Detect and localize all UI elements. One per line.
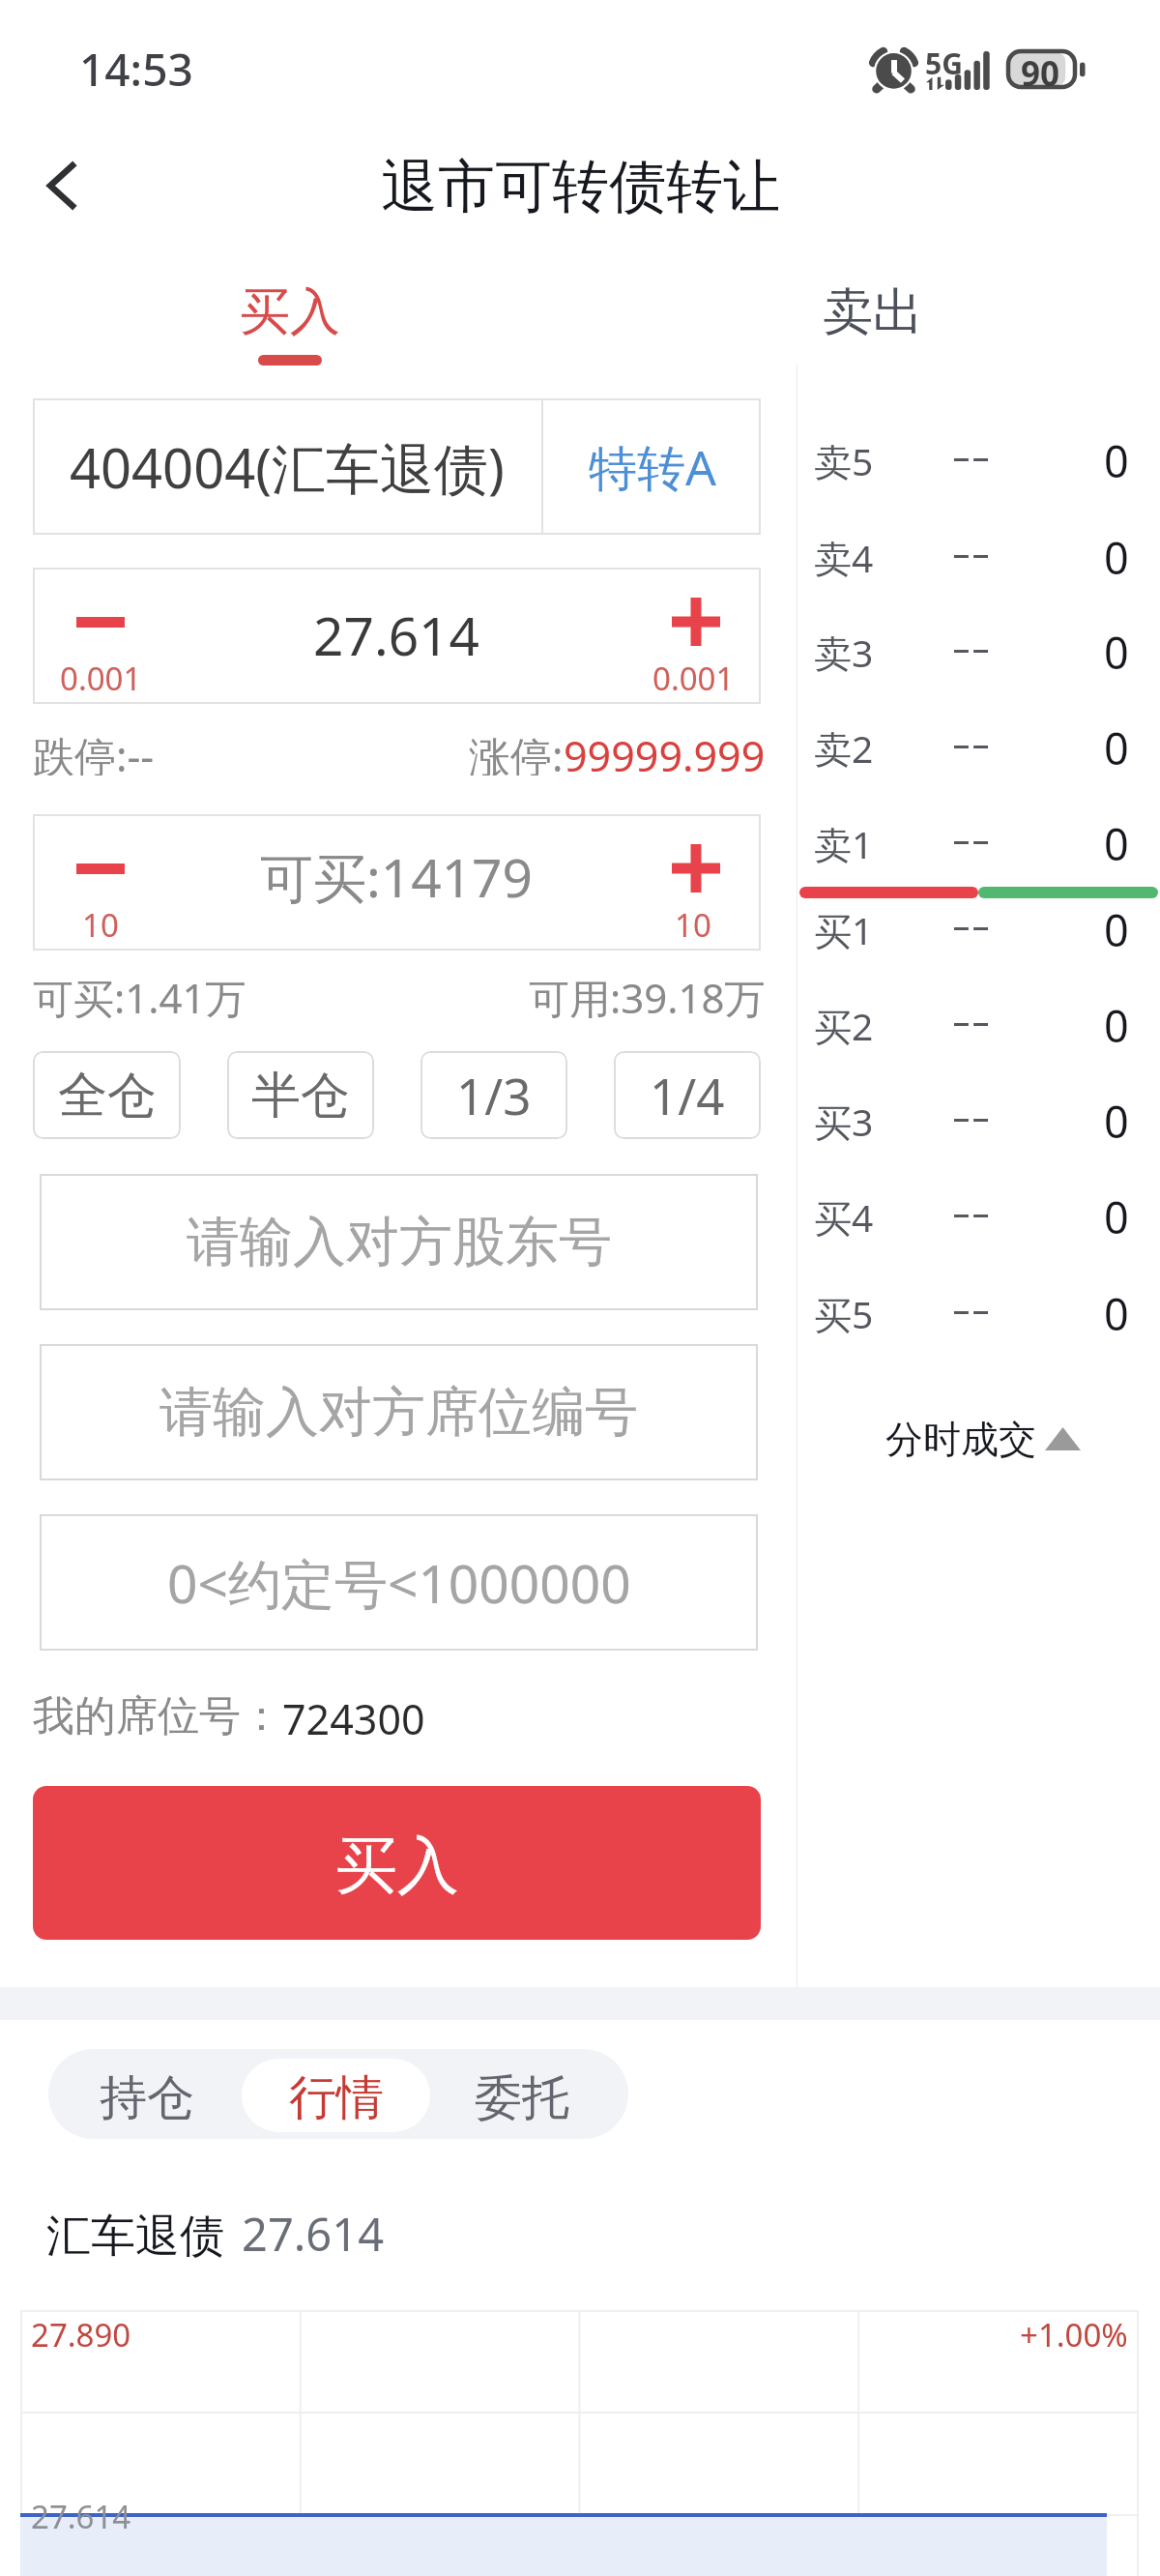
button[interactable]: 买4	[797, 1169, 1160, 1264]
staticText: 行情	[289, 2068, 384, 2128]
staticText: 10	[82, 903, 119, 947]
button[interactable]: 持仓	[52, 2049, 242, 2139]
staticText: 404004(汇车退债)	[70, 430, 505, 504]
staticText: 14:53	[79, 39, 193, 100]
staticText: 0<约定号<1000000	[167, 1546, 631, 1619]
staticText: 0	[1104, 900, 1129, 959]
staticText: 退市可转债转让	[381, 151, 780, 222]
staticText: 27.614	[242, 2203, 385, 2265]
staticText: 可用:39.18万	[529, 970, 766, 1018]
button[interactable]: 买3	[797, 1073, 1160, 1168]
staticText: 买1	[814, 904, 874, 955]
button[interactable]: 买5	[797, 1266, 1160, 1361]
button[interactable]: 1/3	[420, 1051, 567, 1139]
staticText: 卖3	[814, 627, 874, 678]
staticText: 0.001	[652, 657, 735, 700]
staticText: 我的席位号：	[33, 1690, 282, 1742]
staticText: 可买:14179	[260, 840, 534, 913]
button[interactable]: Increase	[625, 814, 761, 951]
button[interactable]: 行情	[242, 2059, 430, 2132]
staticText: 1/4	[650, 1062, 725, 1128]
staticText: 27.890	[31, 2313, 131, 2356]
staticText: 0	[1104, 814, 1129, 873]
button[interactable]: 全仓	[33, 1051, 181, 1139]
button[interactable]: 请输入对方股东号	[40, 1174, 758, 1310]
staticText: 27.614	[31, 2495, 131, 2538]
button[interactable]: 半仓	[227, 1051, 374, 1139]
button[interactable]: Decrease	[33, 814, 168, 951]
staticText: 0	[1104, 718, 1129, 777]
staticText: 0	[1104, 1092, 1129, 1151]
staticText: 卖4	[814, 532, 874, 583]
staticText: 0	[1104, 1187, 1129, 1246]
staticText: 请输入对方席位编号	[159, 1379, 638, 1446]
button[interactable]: 买入	[33, 1786, 761, 1940]
button[interactable]: 卖1	[797, 796, 1160, 891]
staticText: 0	[1104, 431, 1129, 490]
staticText: 724300	[282, 1690, 425, 1747]
staticText: 汇车退债	[46, 2209, 224, 2265]
button[interactable]: 0<约定号<1000000	[40, 1514, 758, 1651]
staticText: 卖出	[823, 280, 923, 344]
button[interactable]: 请输入对方席位编号	[40, 1344, 758, 1480]
button[interactable]: 委托	[430, 2049, 614, 2139]
staticText: 90	[1021, 50, 1060, 90]
button[interactable]: Decrease	[33, 568, 168, 704]
button[interactable]: 卖3	[797, 604, 1160, 699]
staticText: 买4	[814, 1191, 874, 1243]
staticText: 卖1	[814, 818, 874, 869]
staticText: 买3	[814, 1096, 874, 1147]
staticText: 全仓	[58, 1065, 157, 1127]
staticText: 1/3	[456, 1062, 532, 1128]
staticText: 10	[675, 903, 711, 947]
staticText: 卖2	[814, 722, 874, 774]
button[interactable]: 卖出	[766, 280, 980, 379]
staticText: 委托	[475, 2068, 569, 2128]
button[interactable]: 买2	[797, 978, 1160, 1072]
staticText: 0	[1104, 996, 1129, 1055]
staticText: 涨停:	[469, 727, 564, 776]
staticText: 0.001	[60, 657, 142, 700]
staticText: 买2	[814, 1000, 874, 1051]
staticText: 99999.999	[564, 727, 766, 776]
button[interactable]: 1/4	[614, 1051, 761, 1139]
button[interactable]: 404004(汇车退债)	[33, 398, 541, 535]
staticText: 可买:1.41万	[33, 970, 246, 1018]
button[interactable]: Increase	[625, 568, 761, 704]
staticText: 特转A	[589, 434, 716, 500]
button[interactable]: 卖4	[797, 510, 1160, 604]
staticText: 持仓	[100, 2068, 194, 2128]
staticText: 5G	[925, 44, 963, 83]
button[interactable]: 特转A	[543, 398, 761, 535]
staticText: 请输入对方股东号	[187, 1209, 612, 1275]
button[interactable]: 买1	[797, 882, 1160, 977]
staticText: 半仓	[251, 1065, 350, 1127]
button[interactable]: 卖5	[797, 413, 1160, 508]
staticText: 0	[1104, 528, 1129, 587]
button[interactable]: 卖2	[797, 700, 1160, 795]
staticText: 买入	[335, 1827, 459, 1905]
button[interactable]: 买入	[183, 280, 397, 379]
staticText: 卖5	[814, 435, 874, 486]
staticText: 0	[1104, 623, 1129, 682]
staticText: 27.614	[313, 599, 480, 671]
staticText: 买5	[814, 1288, 874, 1339]
staticText: 0	[1104, 1284, 1129, 1343]
button[interactable]: Back	[11, 136, 111, 234]
staticText: 分时成交	[885, 1416, 1036, 1463]
staticText: 买入	[240, 280, 340, 344]
staticText: +1.00%	[1020, 2313, 1128, 2356]
staticText: 跌停:--	[33, 727, 155, 776]
button[interactable]: 分时成交	[885, 1409, 1081, 1469]
